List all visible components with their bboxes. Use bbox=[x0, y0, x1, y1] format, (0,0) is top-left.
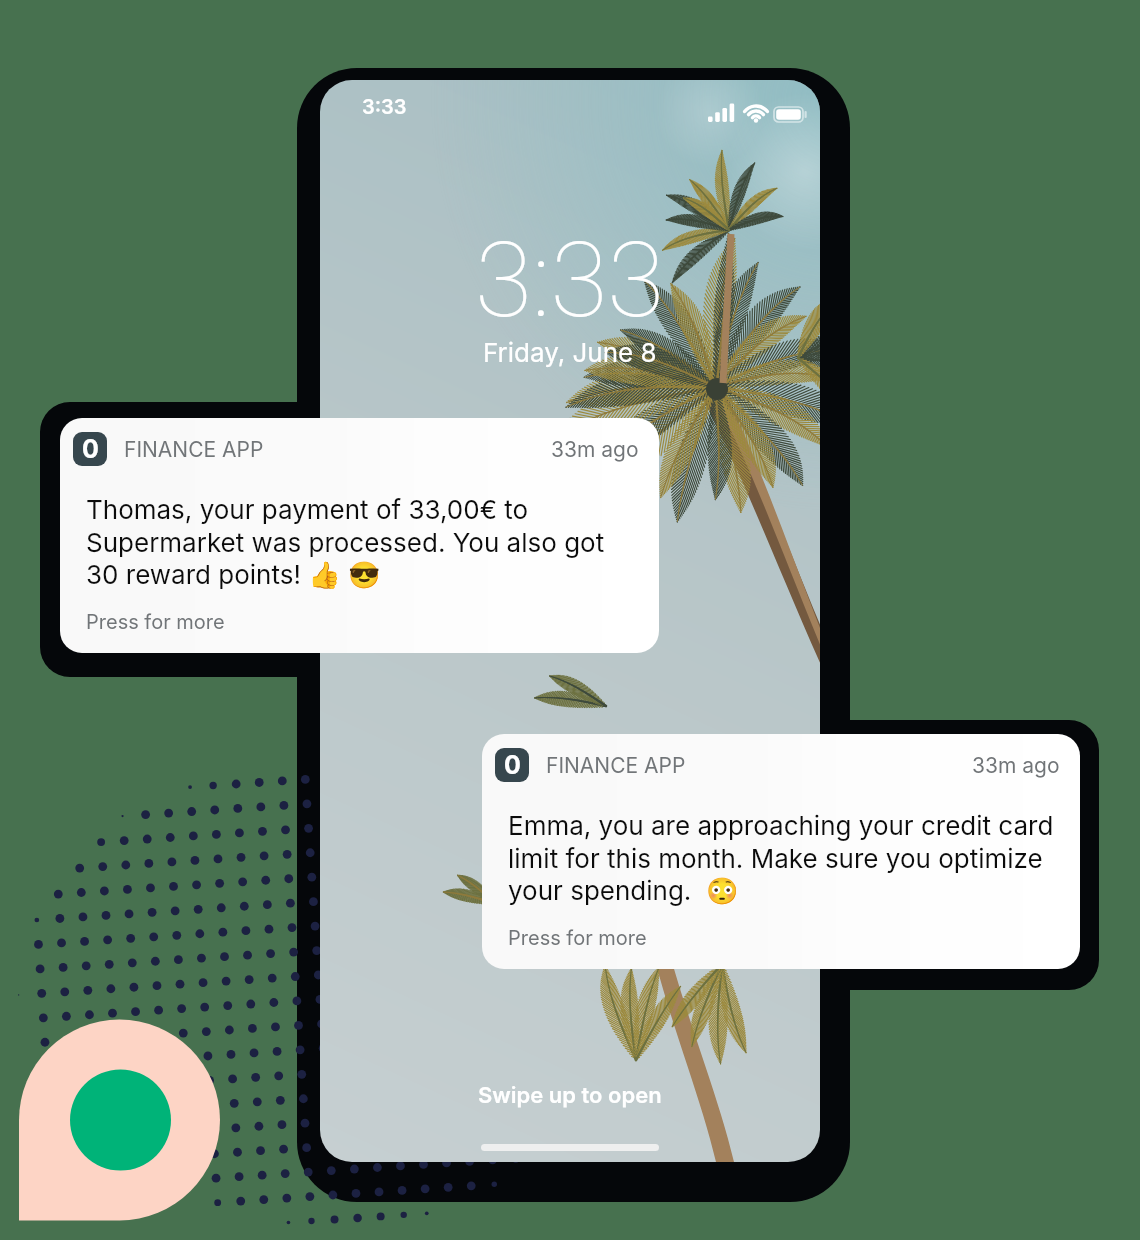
staticText: Swipe up to open bbox=[478, 1082, 662, 1109]
staticText: Press for more bbox=[86, 610, 225, 634]
staticText: Emma, you are approaching your credit ca… bbox=[508, 810, 1054, 906]
staticText: FINANCE APP bbox=[124, 437, 264, 462]
staticText: FINANCE APP bbox=[546, 753, 686, 778]
staticText: 3:33 bbox=[475, 220, 665, 342]
staticText: 0 bbox=[504, 750, 521, 780]
staticText: 33m ago bbox=[972, 753, 1060, 778]
staticText: Press for more bbox=[508, 926, 647, 950]
staticText: 3:33 bbox=[362, 95, 407, 119]
staticText: 0 bbox=[82, 434, 99, 464]
staticText: 33m ago bbox=[551, 437, 639, 462]
button[interactable]: 0 bbox=[60, 418, 659, 653]
button[interactable]: 0 bbox=[482, 734, 1080, 969]
staticText: Friday, June 8 bbox=[483, 337, 657, 368]
staticText: Thomas, your payment of 33,00€ to Superm… bbox=[86, 494, 605, 590]
